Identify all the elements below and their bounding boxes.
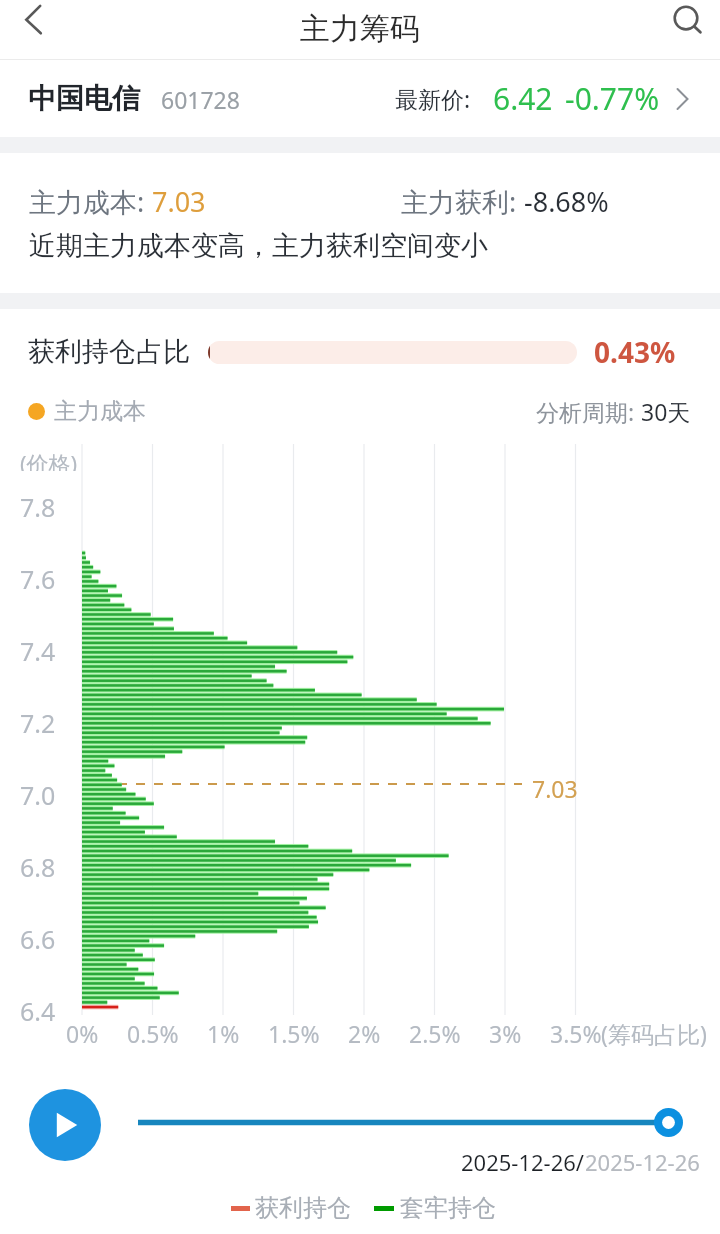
- staticText: 获利持仓占比: [28, 335, 190, 369]
- staticText: 7.8: [20, 490, 56, 522]
- staticText: 0.5%: [127, 1018, 179, 1048]
- button[interactable]: Back: [2, 0, 64, 60]
- staticText: 分析周期:: [536, 396, 641, 427]
- staticText: 6.4: [20, 994, 56, 1026]
- staticText: 获利持仓: [255, 1193, 351, 1223]
- staticText: -0.77%: [565, 78, 660, 119]
- staticText: 30天: [641, 396, 691, 427]
- staticText: 套牢持仓: [400, 1193, 496, 1223]
- staticText: 7.6: [20, 562, 56, 594]
- button[interactable]: 中国电信: [0, 60, 720, 137]
- staticText: 7.03: [532, 773, 578, 804]
- staticText: 3%: [489, 1018, 522, 1048]
- staticText: 3.5%: [550, 1018, 602, 1048]
- staticText: 7.2: [20, 706, 56, 738]
- staticText: 6.6: [20, 922, 56, 954]
- staticText: 0%: [66, 1018, 99, 1048]
- staticText: 7.4: [20, 634, 56, 666]
- staticText: 2025-12-26/: [461, 1147, 585, 1177]
- staticText: 6.8: [20, 850, 56, 882]
- staticText: (筹码占比): [601, 1018, 707, 1048]
- staticText: 6.42: [493, 78, 553, 119]
- staticText: 主力成本:: [29, 183, 152, 220]
- staticText: 主力筹码: [300, 10, 420, 48]
- staticText: 近期主力成本变高，主力获利空间变小: [29, 229, 488, 263]
- staticText: -8.68%: [524, 183, 609, 220]
- staticText: 7.0: [20, 778, 56, 810]
- staticText: 2.5%: [409, 1018, 461, 1048]
- staticText: 主力获利:: [401, 183, 524, 220]
- staticText: 1%: [207, 1018, 240, 1048]
- button[interactable]: Search: [658, 0, 720, 60]
- staticText: 601728: [161, 84, 240, 115]
- staticText: 主力成本: [54, 397, 146, 426]
- staticText: 0.43%: [594, 333, 676, 371]
- staticText: 1.5%: [268, 1018, 320, 1048]
- staticText: 7.03: [152, 183, 206, 220]
- staticText: 2025-12-26: [585, 1147, 700, 1177]
- staticText: 中国电信: [28, 81, 140, 116]
- button[interactable]: Play: [29, 1089, 101, 1161]
- staticText: 2%: [348, 1018, 381, 1048]
- staticText: (价格): [20, 448, 78, 471]
- staticText: 最新价:: [395, 83, 471, 114]
